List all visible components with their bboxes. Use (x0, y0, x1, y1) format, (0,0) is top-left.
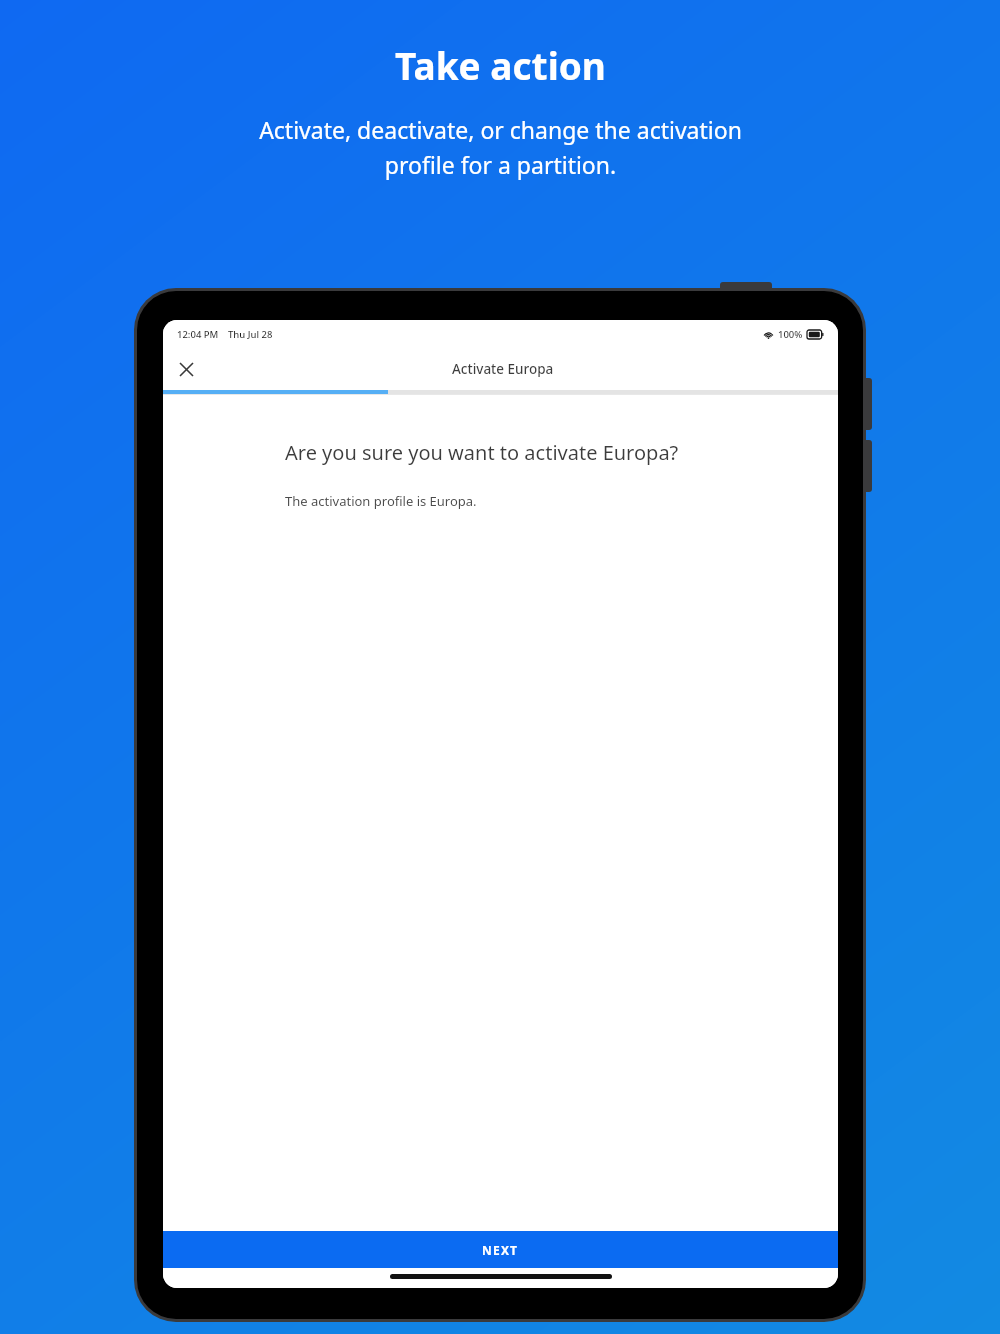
staticText: 100% (778, 328, 803, 341)
button[interactable]: NEXT (163, 1231, 838, 1268)
staticText: Are you sure you want to activate Europa… (285, 439, 679, 466)
staticText: Activate, deactivate, or change the acti… (259, 114, 742, 181)
staticText: The activation profile is Europa. (285, 492, 477, 510)
staticText: Take action (395, 40, 606, 90)
staticText: 12:04 PM (177, 328, 219, 341)
staticText: Activate Europa (452, 360, 554, 378)
staticText: Thu Jul 28 (228, 328, 273, 341)
staticText: NEXT (482, 1242, 519, 1258)
button[interactable]: Close (169, 352, 203, 386)
